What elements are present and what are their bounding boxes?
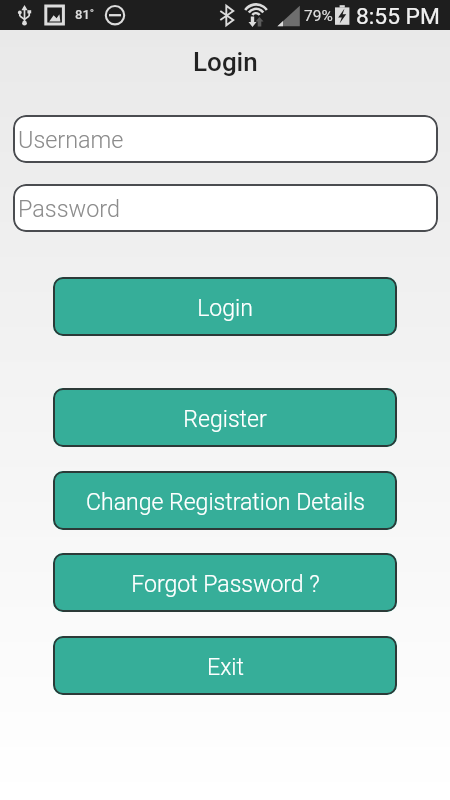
staticText: Login bbox=[197, 295, 253, 322]
button[interactable]: Password bbox=[13, 184, 438, 232]
staticText: Exit bbox=[207, 654, 244, 681]
staticText: Password bbox=[18, 195, 120, 222]
staticText: Change Registration Details bbox=[86, 489, 365, 516]
button[interactable]: Change Registration Details bbox=[53, 471, 397, 530]
staticText: 81˚ bbox=[75, 7, 95, 22]
staticText: 8:55 PM bbox=[356, 3, 440, 30]
button[interactable]: Register bbox=[53, 388, 397, 447]
button[interactable]: Forgot Password ? bbox=[53, 553, 397, 612]
staticText: Forgot Password ? bbox=[131, 571, 320, 598]
button[interactable]: Login bbox=[53, 277, 397, 336]
button[interactable]: Username bbox=[13, 115, 438, 163]
button[interactable]: Exit bbox=[53, 636, 397, 695]
staticText: Register bbox=[183, 406, 267, 433]
staticText: 79% bbox=[304, 7, 333, 25]
staticText: Login bbox=[193, 47, 258, 77]
staticText: Username bbox=[18, 126, 124, 153]
